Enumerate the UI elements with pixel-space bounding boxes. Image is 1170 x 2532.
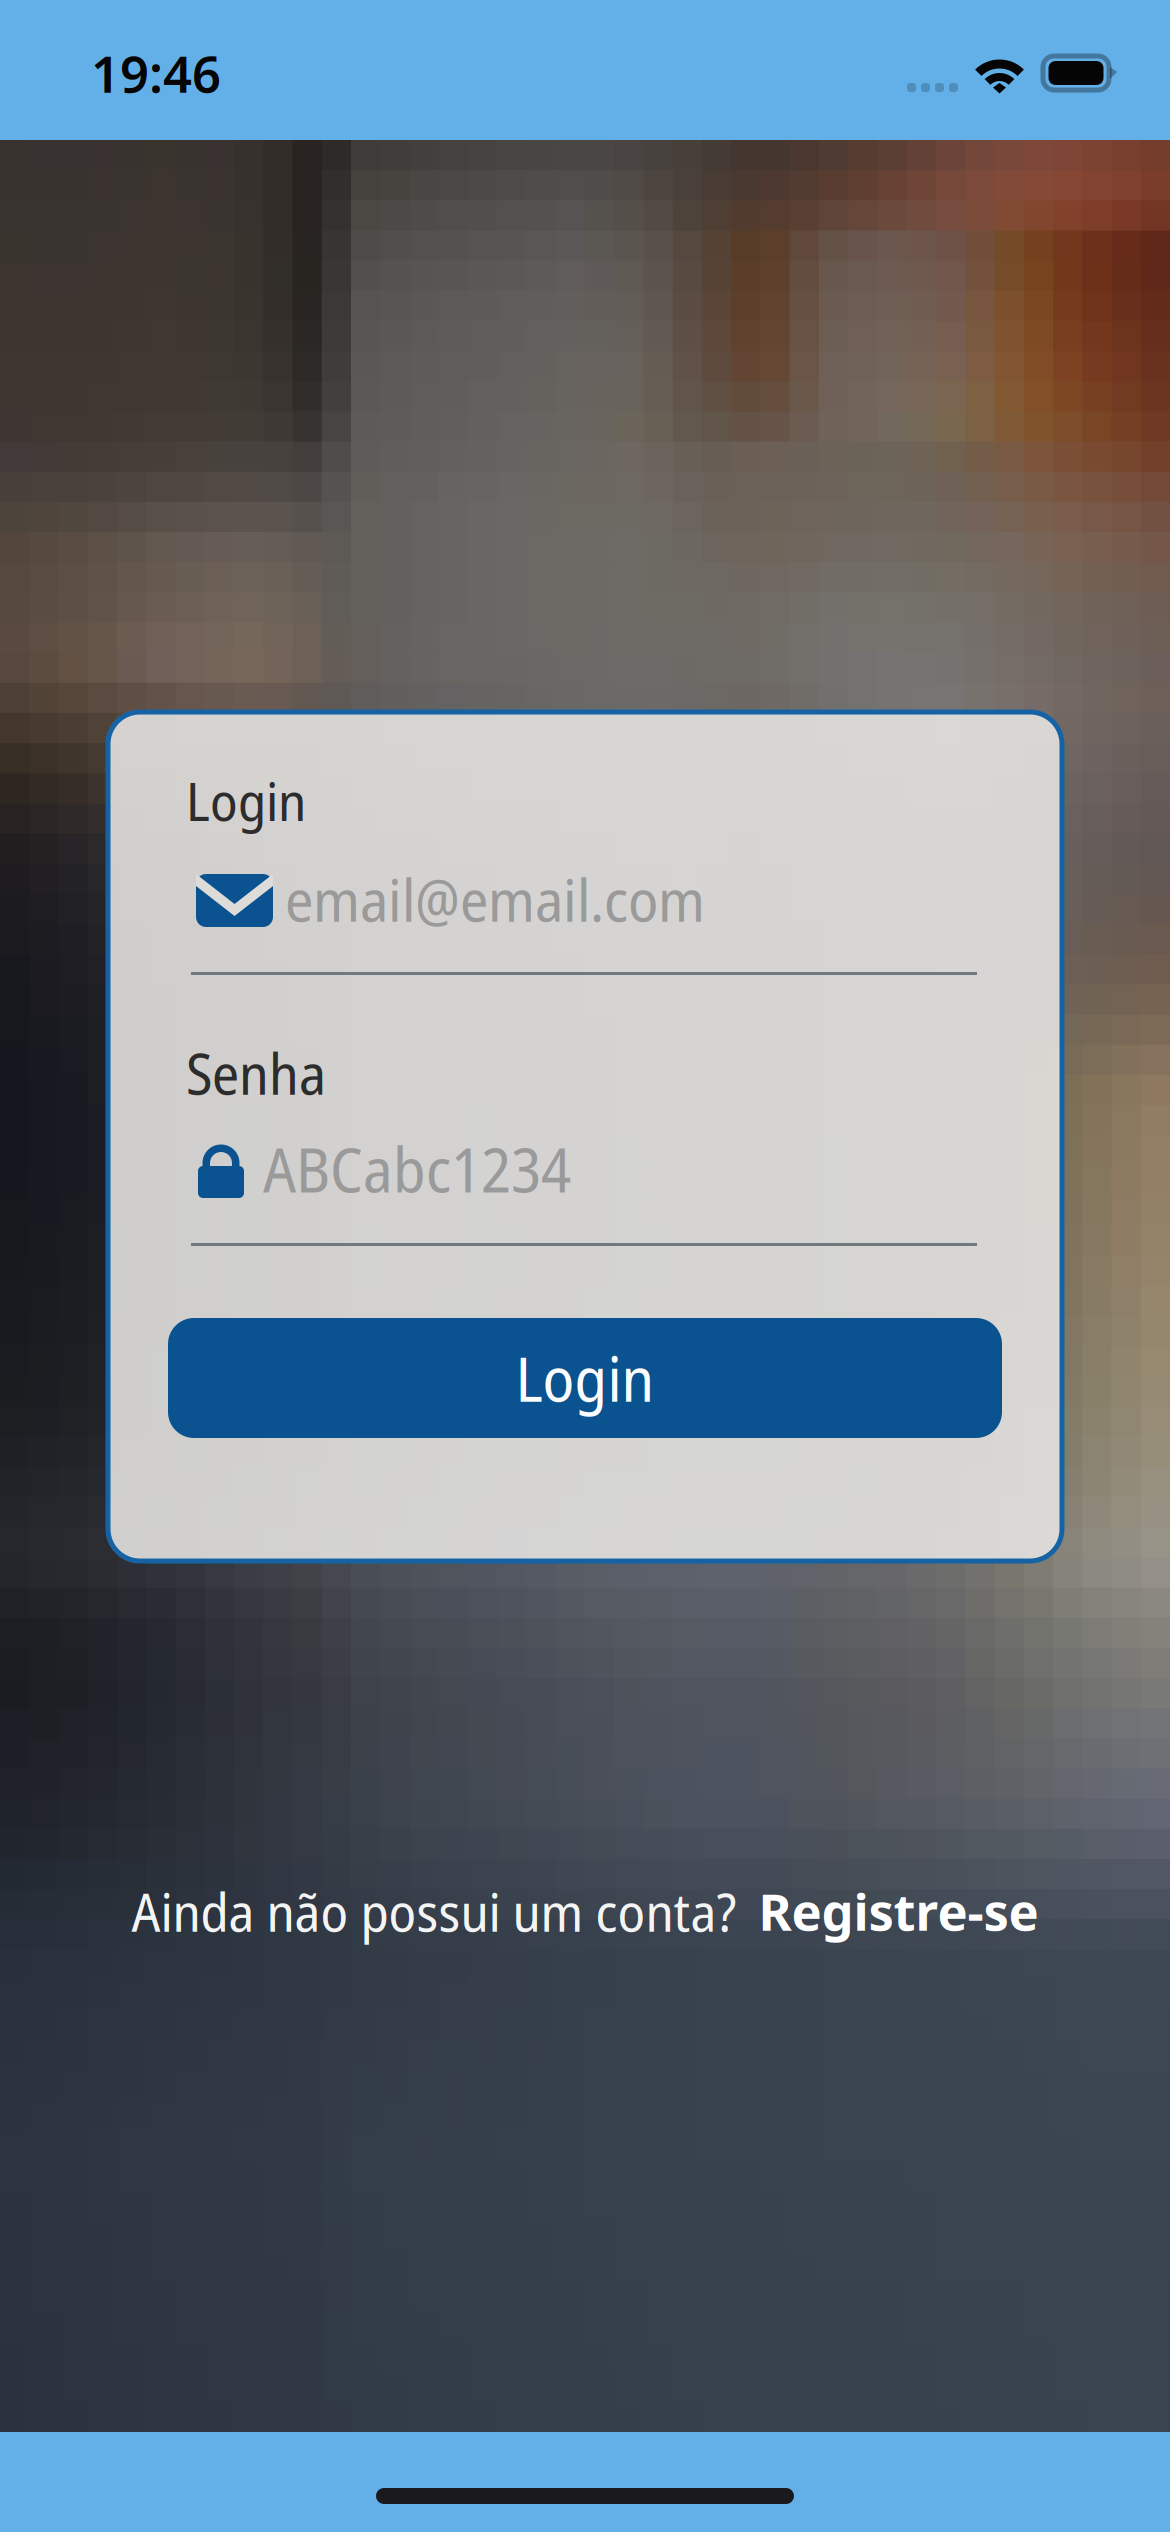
- staticText: ABCabc1234: [263, 1127, 571, 1210]
- button[interactable]: Ainda não possui um conta?: [0, 1869, 1170, 1953]
- staticText: Ainda não possui um conta?: [131, 1875, 736, 1947]
- staticText: Login: [186, 764, 306, 837]
- staticText: Registre-se: [758, 1876, 1038, 1945]
- staticText: Login: [515, 1336, 654, 1420]
- staticText: Senha: [186, 1035, 326, 1111]
- staticText: email@email.com: [285, 859, 705, 939]
- button[interactable]: Login: [168, 1318, 1002, 1438]
- staticText: 19:46: [91, 38, 221, 107]
